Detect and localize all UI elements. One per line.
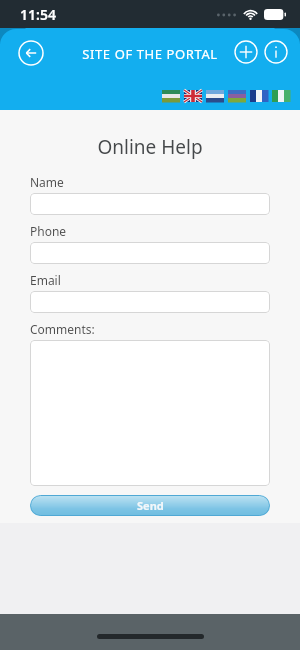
button[interactable]: Phone <box>30 242 270 264</box>
button[interactable]: Back <box>18 40 44 66</box>
staticText: Phone <box>30 223 67 239</box>
staticText: Online Help <box>0 134 300 160</box>
button[interactable]: Language 1 <box>162 90 180 102</box>
staticText: Email <box>30 272 61 288</box>
button[interactable]: English <box>184 90 202 102</box>
button[interactable]: Name <box>30 193 270 215</box>
button[interactable]: Send <box>30 495 270 516</box>
button[interactable]: French <box>250 90 268 102</box>
button[interactable]: Info <box>264 40 288 64</box>
button[interactable]: Comments <box>30 340 270 486</box>
button[interactable]: Italian <box>272 90 290 102</box>
button[interactable]: Email <box>30 291 270 313</box>
staticText: Comments: <box>30 321 95 337</box>
staticText: SITE OF THE PORTAL <box>82 45 218 63</box>
button[interactable]: Language 4 <box>228 90 246 102</box>
staticText: Name <box>30 174 64 190</box>
button[interactable]: Add <box>234 40 258 64</box>
button[interactable]: Language 3 <box>206 90 224 102</box>
staticText: Send <box>137 498 164 513</box>
staticText: 11:54 <box>20 5 56 24</box>
